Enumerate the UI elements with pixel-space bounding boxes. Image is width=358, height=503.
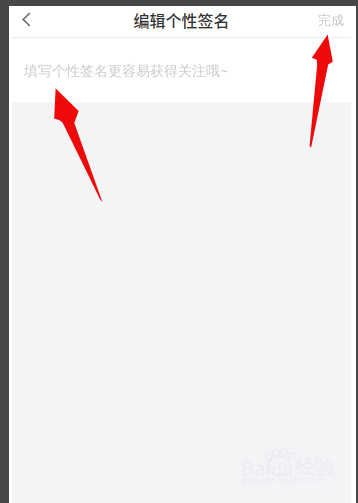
button[interactable]: 返回: [12, 6, 44, 37]
button[interactable]: 填写个性签名更容易获得关注哦~: [12, 38, 351, 102]
staticText: Bai: [241, 454, 270, 481]
staticText: 编辑个性签名: [133, 8, 229, 32]
staticText: 完成: [318, 12, 344, 29]
staticText: 经验: [295, 454, 335, 479]
button[interactable]: 完成: [309, 6, 351, 37]
staticText: du: [271, 458, 293, 482]
staticText: 填写个性签名更容易获得关注哦~: [24, 61, 228, 80]
